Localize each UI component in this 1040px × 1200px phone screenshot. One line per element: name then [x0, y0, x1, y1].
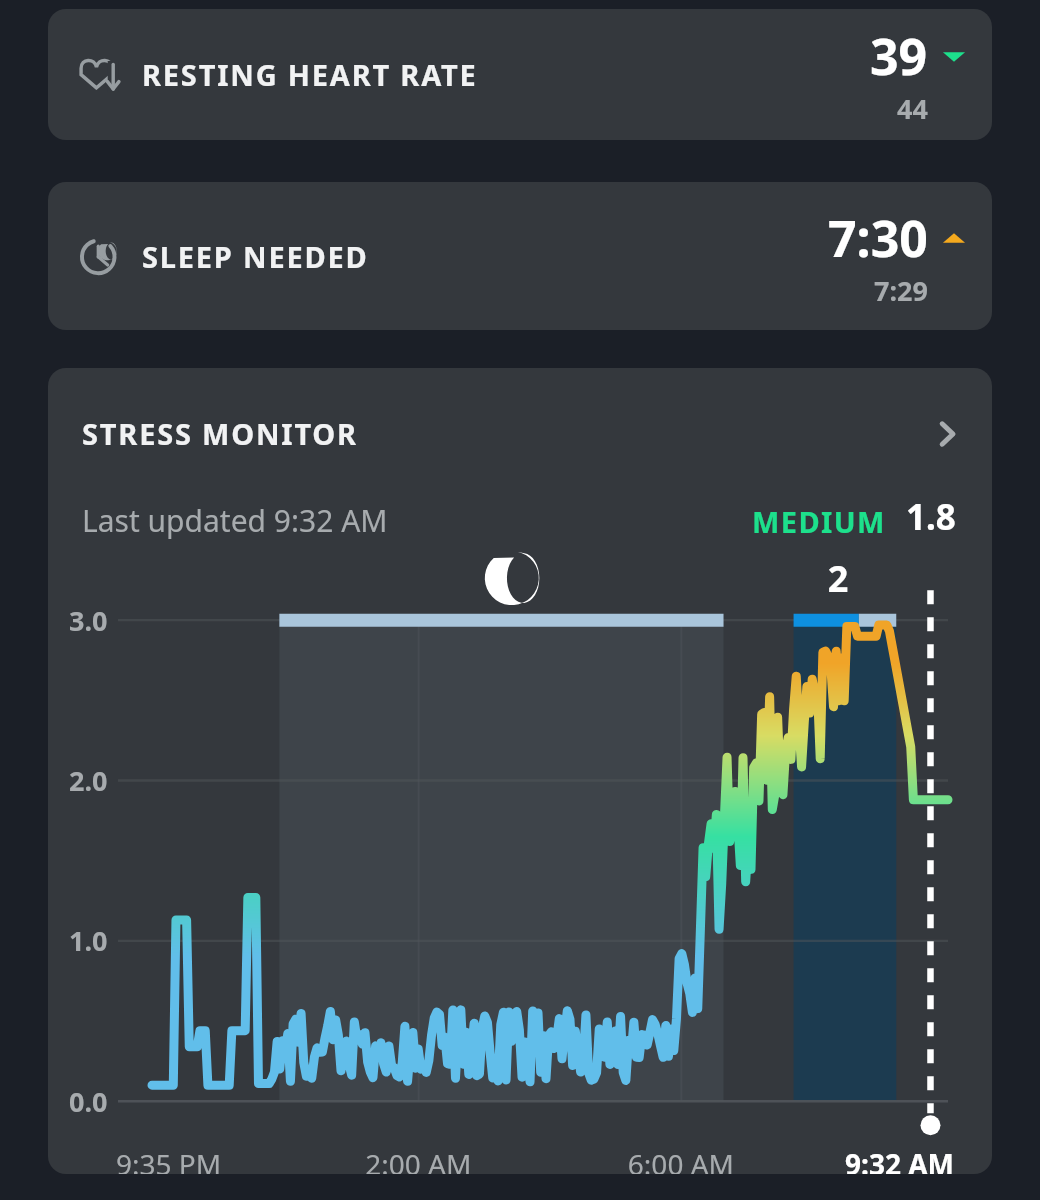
staticText: MEDIUM: [752, 502, 886, 541]
button[interactable]: STRESS MONITOR: [48, 414, 992, 453]
staticText: 1.8: [906, 493, 956, 541]
staticText: 44: [897, 90, 928, 127]
staticText: 7:30: [828, 204, 928, 272]
staticText: STRESS MONITOR: [82, 414, 358, 453]
staticText: 39: [870, 22, 928, 90]
button[interactable]: SLEEP NEEDED: [48, 182, 992, 330]
staticText: SLEEP NEEDED: [142, 237, 369, 276]
staticText: 7:29: [874, 272, 928, 309]
staticText: Last updated 9:32 AM: [82, 500, 388, 541]
button[interactable]: RESTING HEART RATE: [48, 9, 992, 140]
other: Open stress monitor details: [932, 419, 962, 449]
staticText: RESTING HEART RATE: [142, 55, 478, 94]
